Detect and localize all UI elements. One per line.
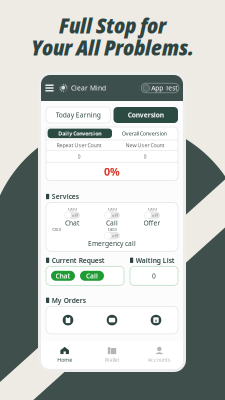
- staticText: off: [112, 233, 118, 238]
- staticText: My Orders: [52, 296, 86, 305]
- button[interactable]: Reports: [143, 309, 168, 331]
- staticText: Offer: [143, 218, 160, 227]
- button[interactable]: Conversion: [113, 107, 178, 123]
- button[interactable]: App Test: [141, 83, 179, 93]
- button[interactable]: ₹20.0: [143, 206, 160, 227]
- staticText: Emergency call: [88, 239, 136, 248]
- staticText: Today Earning: [56, 111, 101, 119]
- staticText: Wallet: [104, 356, 119, 363]
- staticText: Full Stop for: [59, 10, 166, 40]
- button[interactable]: Orders: [55, 309, 80, 331]
- staticText: Overall Conversion: [122, 130, 167, 137]
- staticText: Chat: [55, 271, 70, 280]
- staticText: off: [112, 212, 118, 218]
- staticText: Services: [52, 192, 79, 201]
- staticText: Home: [57, 356, 72, 363]
- button[interactable]: Accounts: [136, 341, 183, 369]
- staticText: ₹40.0: [107, 227, 116, 232]
- staticText: ₹20.0: [107, 206, 116, 212]
- staticText: Accounts: [148, 356, 171, 363]
- staticText: 0%: [104, 164, 120, 179]
- staticText: Waiting List: [136, 256, 175, 265]
- staticText: 0: [143, 153, 146, 160]
- staticText: Conversion: [128, 111, 164, 119]
- staticText: off: [72, 212, 78, 218]
- staticText: off: [152, 212, 158, 218]
- button[interactable]: ₹20.0: [64, 206, 80, 227]
- staticText: Repeat User Count: [56, 142, 101, 149]
- button[interactable]: Today Earning: [46, 107, 110, 123]
- staticText: New User Count: [125, 142, 164, 149]
- staticText: Clear Mind: [71, 84, 106, 92]
- button[interactable]: Wallet: [88, 341, 136, 369]
- staticText: 0: [152, 271, 156, 280]
- staticText: Call: [106, 218, 118, 227]
- staticText: 0: [77, 153, 80, 160]
- staticText: Daily Conversion: [58, 130, 101, 137]
- button[interactable]: Menu: [43, 75, 56, 101]
- button[interactable]: ₹20.0: [104, 206, 120, 227]
- button[interactable]: Messages: [99, 309, 124, 331]
- staticText: Call: [86, 271, 98, 280]
- button[interactable]: Home: [41, 341, 88, 369]
- staticText: Current Request: [52, 256, 105, 265]
- staticText: ₹20.0: [147, 206, 156, 212]
- staticText: Chat: [65, 218, 79, 227]
- button[interactable]: Chat: [51, 271, 75, 281]
- staticText: Your All Problems.: [31, 32, 194, 62]
- staticText: ₹20.0: [67, 206, 76, 212]
- staticText: App Test: [151, 84, 177, 92]
- button[interactable]: Call: [80, 271, 104, 281]
- staticText: ₹20.0: [52, 227, 61, 232]
